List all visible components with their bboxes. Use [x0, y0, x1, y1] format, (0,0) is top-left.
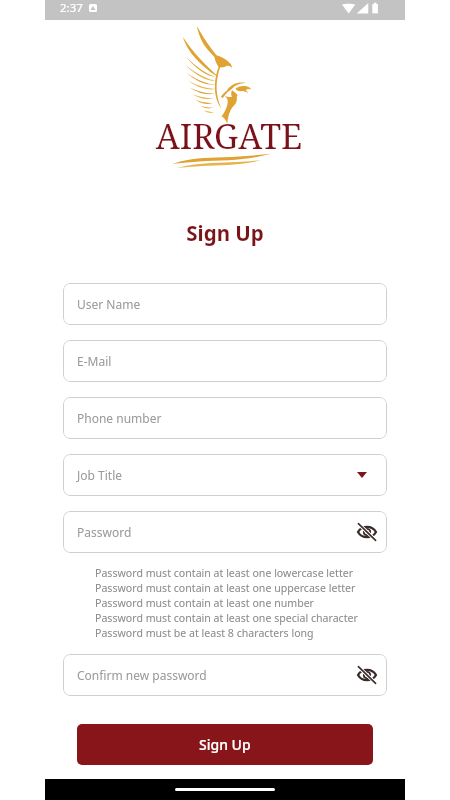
staticText: E-Mail	[77, 353, 112, 369]
staticText: Password	[77, 524, 132, 540]
button[interactable]: Sign Up	[77, 724, 373, 765]
staticText: Phone number	[77, 410, 162, 426]
staticText: Password must contain at least one speci…	[95, 611, 358, 625]
staticText: Password must contain at least one numbe…	[95, 596, 314, 610]
button[interactable]: Job Title	[63, 454, 387, 496]
staticText: User Name	[77, 296, 141, 312]
staticText: Sign Up	[199, 735, 251, 754]
button[interactable]: Toggle password visibility	[356, 664, 378, 686]
button[interactable]: User Name	[63, 283, 387, 325]
button[interactable]: E-Mail	[63, 340, 387, 382]
button[interactable]: Phone number	[63, 397, 387, 439]
button[interactable]: Confirm new password	[63, 654, 387, 696]
button[interactable]: Password	[63, 511, 387, 553]
staticText: Password must contain at least one upper…	[95, 581, 356, 595]
button[interactable]: Toggle password visibility	[356, 521, 378, 543]
staticText: 2:37	[60, 0, 83, 16]
button[interactable]: Open job title dropdown	[354, 467, 370, 483]
staticText: Job Title	[77, 467, 123, 483]
staticText: Password must contain at least one lower…	[95, 566, 354, 580]
staticText: Password must be at least 8 characters l…	[95, 626, 314, 640]
staticText: AIRGATE	[129, 113, 329, 159]
staticText: Sign Up	[0, 219, 450, 247]
staticText: Confirm new password	[77, 667, 207, 683]
